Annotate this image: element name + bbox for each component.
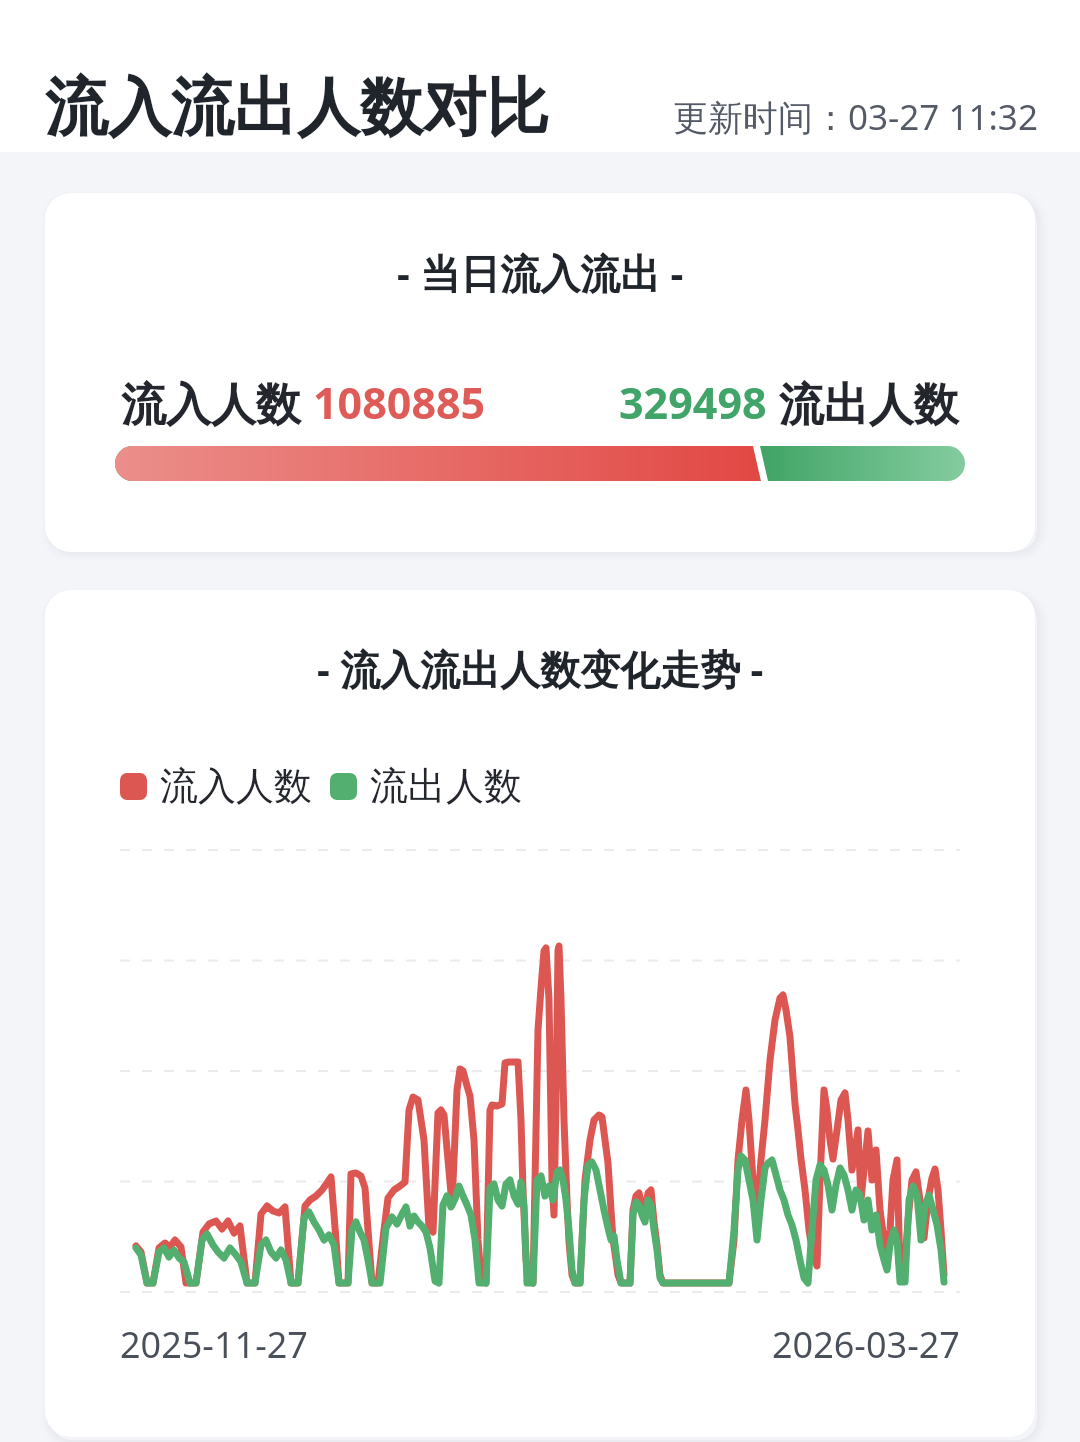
staticText: 更新时间：03-27 11:32 xyxy=(673,93,1038,141)
button[interactable]: - 当日流入流出 - xyxy=(45,193,1035,552)
staticText: 流出人数 xyxy=(370,762,522,810)
staticText: 2026-03-27 xyxy=(772,1320,960,1369)
staticText: 流入人数 xyxy=(160,762,312,810)
staticText: 329498 xyxy=(619,373,767,432)
staticText: - 当日流入流出 - xyxy=(397,245,684,300)
staticText: 流入人数 xyxy=(121,372,313,433)
staticText: 2025-11-27 xyxy=(120,1320,308,1369)
staticText: - 流入流出人数变化走势 - xyxy=(317,641,764,696)
staticText: 流入流出人数对比 xyxy=(45,68,549,147)
staticText: 流出人数 xyxy=(767,372,959,433)
button[interactable]: - 流入流出人数变化走势 - xyxy=(45,590,1035,1437)
staticText: 1080885 xyxy=(313,373,486,432)
